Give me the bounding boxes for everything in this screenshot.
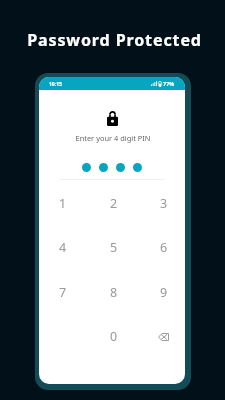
staticText: 0 [110, 328, 118, 345]
staticText: 2 [110, 195, 118, 212]
button[interactable]: 7 [39, 270, 87, 314]
staticText: 7 [59, 284, 67, 301]
staticText: 6 [160, 239, 168, 256]
staticText: 3 [160, 195, 168, 212]
button[interactable]: 8 [89, 270, 138, 314]
staticText: 77% [163, 80, 175, 87]
button[interactable]: 4 [39, 225, 87, 269]
button[interactable]: 6 [139, 225, 185, 269]
button[interactable]: 9 [139, 270, 185, 314]
staticText: 4 [59, 239, 67, 256]
button[interactable]: 1 [39, 181, 87, 225]
staticText: 10:15 [49, 81, 62, 88]
button[interactable]: Backspace [139, 314, 185, 358]
button[interactable]: 3 [139, 181, 185, 225]
button[interactable]: 5 [89, 225, 138, 269]
staticText: 9 [160, 284, 168, 301]
staticText: Password Protected [2, 29, 225, 51]
button[interactable]: 0 [89, 314, 138, 358]
button[interactable]: 2 [89, 181, 138, 225]
staticText: Enter your 4 digit PIN [40, 133, 185, 143]
staticText: 5 [110, 239, 118, 256]
staticText: 8 [110, 284, 118, 301]
staticText: 1 [59, 195, 67, 212]
